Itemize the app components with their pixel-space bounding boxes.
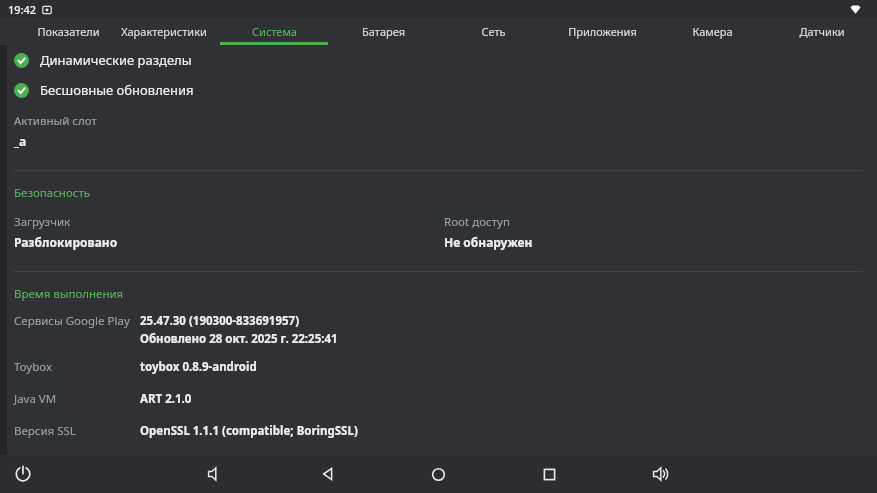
staticText: Java VM [14, 391, 57, 407]
button[interactable]: Volume up [641, 455, 679, 493]
staticText: Загрузчик [14, 214, 71, 230]
button[interactable]: Home [419, 455, 457, 493]
staticText: Время выполнения [14, 286, 124, 302]
staticText: _a [14, 133, 27, 149]
staticText: ART 2.1.0 [140, 391, 192, 407]
staticText: Батарея [362, 24, 405, 39]
button[interactable]: Volume down [196, 455, 234, 493]
staticText: Обновлено 28 окт. 2025 г. 22:25:41 [140, 331, 338, 347]
staticText: Датчики [799, 24, 845, 39]
button[interactable]: Батарея [329, 18, 437, 45]
button[interactable]: Приложения [548, 18, 656, 45]
button[interactable]: Характеристики [110, 18, 218, 45]
button[interactable]: Камера [658, 18, 766, 45]
button[interactable]: Показатели [14, 18, 122, 45]
staticText: Характеристики [121, 24, 207, 39]
staticText: Бесшовные обновления [40, 81, 194, 99]
button[interactable]: Датчики [768, 18, 876, 45]
button[interactable]: Бесшовные обновления [0, 81, 877, 99]
button[interactable]: Динамические разделы [0, 51, 877, 69]
button[interactable]: Back [309, 455, 347, 493]
button[interactable]: Recents [530, 455, 568, 493]
button[interactable]: Сеть [439, 18, 547, 45]
staticText: toybox 0.8.9-android [140, 359, 257, 375]
staticText: Камера [692, 24, 733, 39]
staticText: Динамические разделы [40, 51, 192, 69]
staticText: Активный слот [14, 113, 97, 129]
staticText: 19:42 [8, 2, 37, 17]
staticText: Сервисы Google Play [14, 313, 130, 329]
staticText: Разблокировано [14, 234, 118, 250]
staticText: Toybox [14, 359, 53, 375]
staticText: OpenSSL 1.1.1 (compatible; BoringSSL) [140, 423, 358, 439]
button[interactable]: Power [4, 455, 42, 493]
staticText: 25.47.30 (190300-833691957) [140, 313, 300, 329]
staticText: Система [252, 24, 297, 39]
staticText: Root доступ [444, 214, 510, 230]
staticText: Приложения [568, 24, 637, 39]
staticText: Безопасность [14, 185, 91, 201]
staticText: Версия SSL [14, 423, 76, 439]
button[interactable]: Система [220, 18, 328, 45]
staticText: Не обнаружен [444, 234, 533, 250]
staticText: Сеть [481, 24, 506, 39]
staticText: Показатели [37, 24, 100, 39]
